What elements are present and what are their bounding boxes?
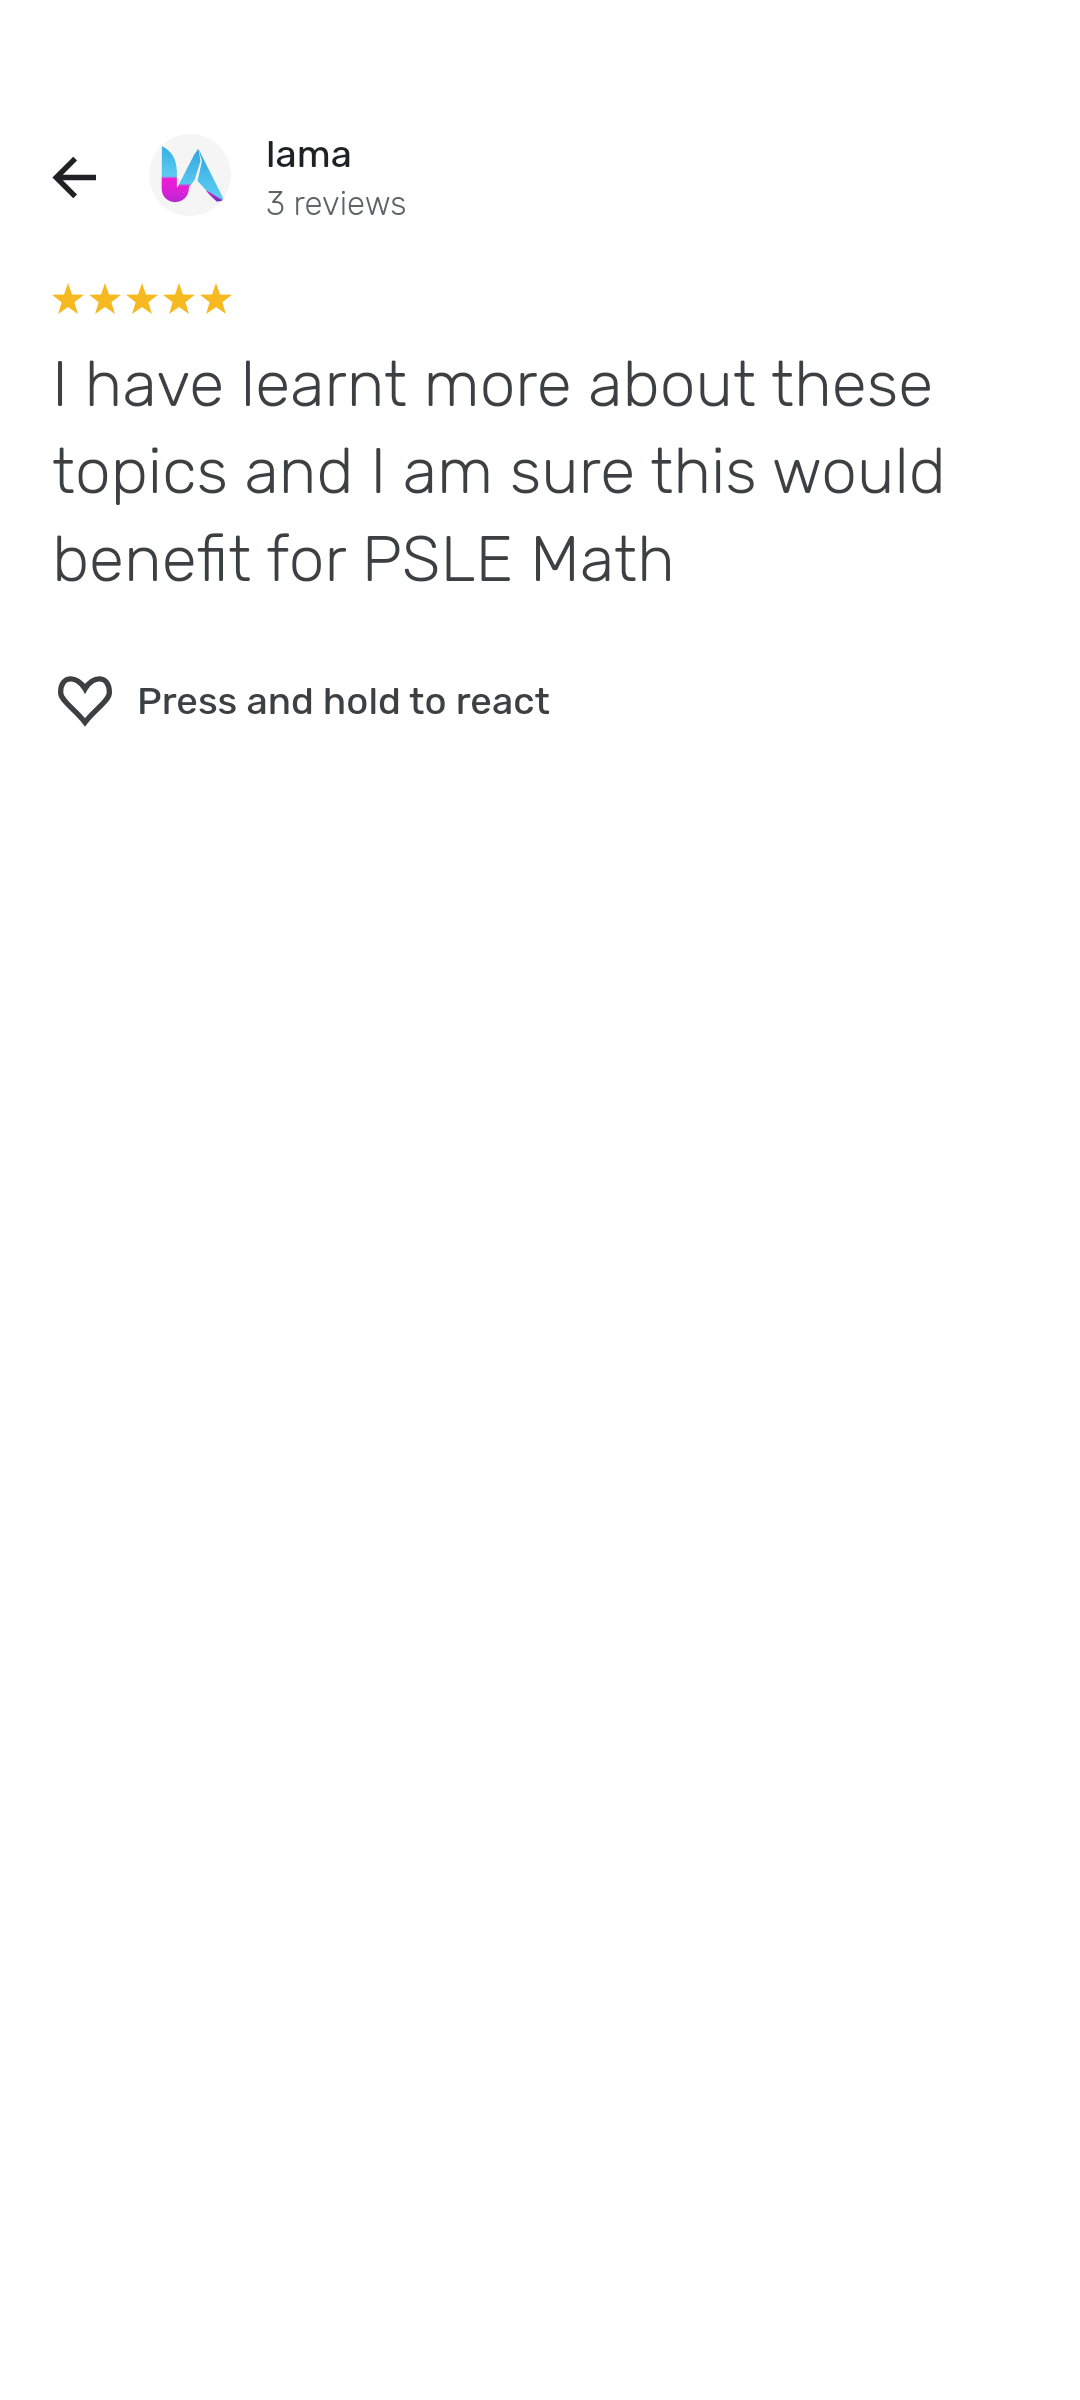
- staticText: 3 reviews: [266, 184, 407, 223]
- staticText: lama: [266, 131, 352, 176]
- staticText: Press and hold to react: [137, 678, 550, 723]
- button[interactable]: Back: [26, 129, 122, 225]
- button[interactable]: Press and hold to react: [44, 665, 564, 735]
- staticText: I have learnt more about these topics an…: [52, 346, 1012, 597]
